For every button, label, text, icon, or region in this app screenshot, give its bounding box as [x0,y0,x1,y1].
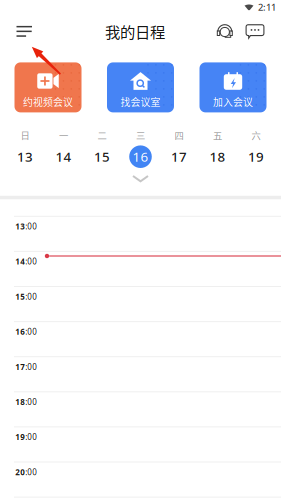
button[interactable]: 约视频会议 [14,62,81,112]
staticText: 加入会议 [213,95,253,109]
button[interactable]: Menu [0,19,38,44]
button[interactable]: 六 [237,126,275,168]
button[interactable]: 三 [121,126,160,168]
staticText: 二 [97,128,106,142]
staticText: 16:00 [15,326,37,337]
staticText: 17 [171,148,187,165]
staticText: 13 [17,148,33,165]
staticText: 六 [251,128,260,142]
staticText: 四 [174,128,183,142]
staticText: 我的日程 [105,20,165,42]
button[interactable]: 五 [198,126,237,168]
button[interactable]: 加入会议 [199,62,266,112]
staticText: 13:00 [15,221,37,232]
button[interactable]: 四 [160,126,198,168]
staticText: 日 [20,128,29,142]
staticText: 约视频会议 [23,95,73,109]
staticText: 14 [55,148,71,165]
button[interactable]: 一 [44,126,83,168]
staticText: 17:00 [15,361,37,372]
staticText: 五 [213,128,222,142]
button[interactable]: 二 [83,126,121,168]
staticText: 19:00 [15,432,37,442]
staticText: 20:00 [15,467,37,477]
staticText: 找会议室 [120,95,160,109]
staticText: 18:00 [15,397,37,407]
staticText: 19 [248,148,264,165]
button[interactable]: Expand calendar [120,170,161,187]
button[interactable]: Messages [242,21,267,42]
staticText: 15:00 [15,291,37,302]
staticText: 14:00 [15,256,37,267]
staticText: 一 [59,128,68,142]
staticText: 三 [136,128,145,142]
button[interactable]: 找会议室 [107,62,174,112]
staticText: 18 [209,148,225,165]
button[interactable]: 日 [6,126,44,168]
staticText: 16 [132,148,148,165]
staticText: 2:11 [258,1,276,13]
staticText: 15 [94,148,110,165]
button[interactable]: Customer service [214,21,235,42]
